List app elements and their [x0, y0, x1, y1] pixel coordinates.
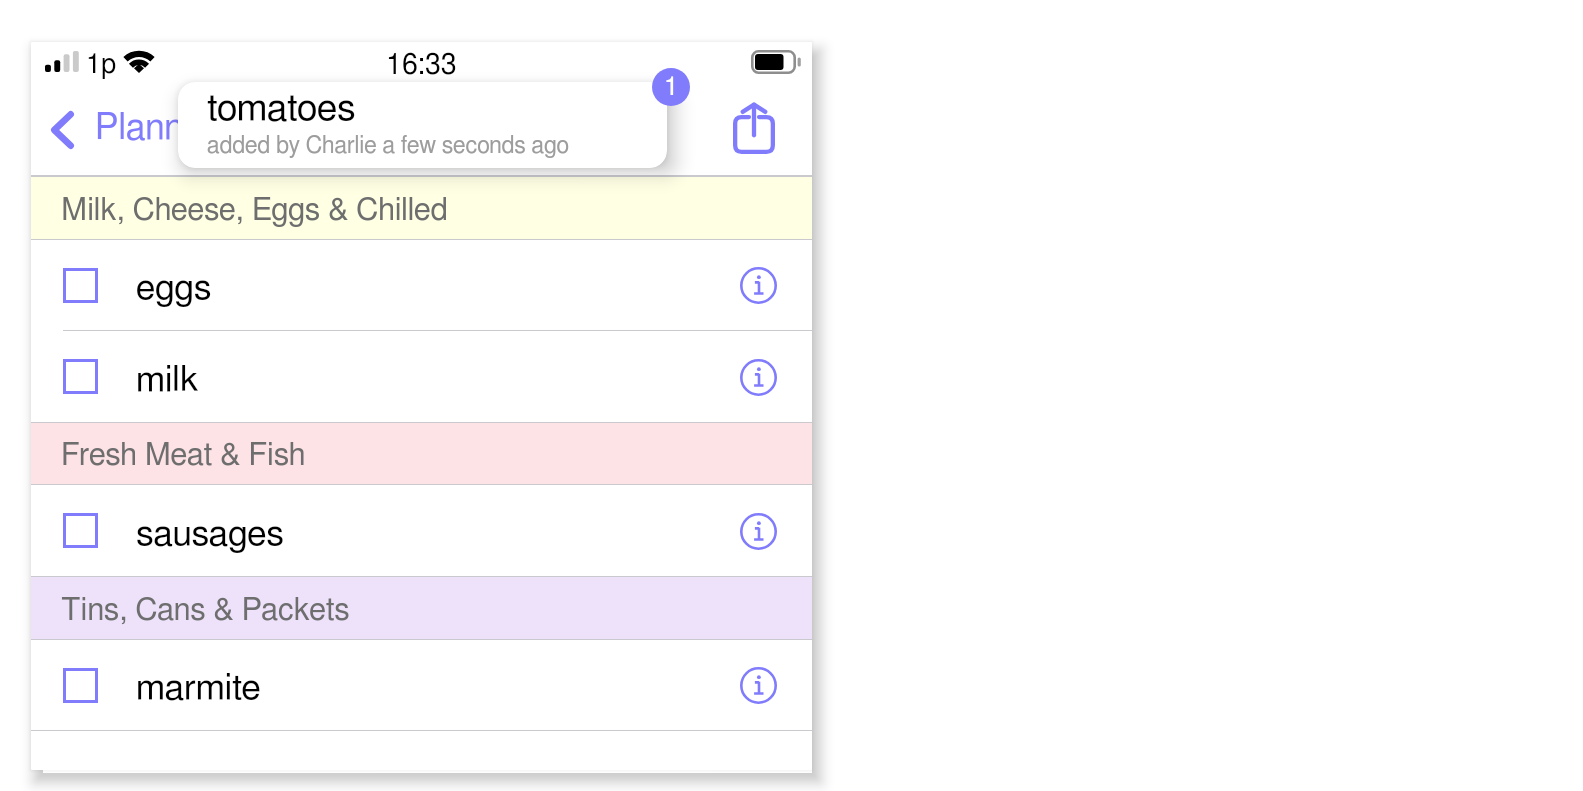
button[interactable]: milk: [31, 331, 812, 422]
button[interactable]: eggs: [31, 240, 812, 330]
staticText: eggs: [136, 270, 212, 306]
staticText: added by Charlie a few seconds ago: [207, 134, 569, 157]
staticText: Tins, Cans & Packets: [61, 595, 350, 626]
button[interactable]: Share: [725, 95, 783, 161]
staticText: milk: [136, 362, 199, 398]
button[interactable]: Item info: [734, 661, 782, 709]
button[interactable]: Planner: [95, 110, 215, 146]
button[interactable]: Tins, Cans & Packets: [31, 576, 812, 640]
staticText: 1: [664, 74, 679, 100]
button[interactable]: sausages: [31, 485, 812, 576]
button[interactable]: Item info: [734, 507, 782, 555]
staticText: sausages: [136, 516, 284, 552]
button[interactable]: 1 new item: [652, 68, 690, 106]
staticText: Milk, Cheese, Eggs & Chilled: [61, 195, 448, 226]
staticText: tomatoes: [207, 90, 356, 128]
button[interactable]: Item info: [734, 353, 782, 401]
button[interactable]: tomatoes: [178, 82, 667, 168]
button[interactable]: Back: [39, 96, 86, 164]
button[interactable]: marmite: [31, 640, 812, 730]
button[interactable]: Item info: [734, 261, 782, 309]
staticText: Fresh Meat & Fish: [61, 440, 306, 471]
button[interactable]: Milk, Cheese, Eggs & Chilled: [31, 176, 812, 240]
staticText: marmite: [136, 670, 261, 706]
button[interactable]: Fresh Meat & Fish: [31, 422, 812, 485]
staticText: 1p: [86, 51, 117, 78]
staticText: 16:33: [386, 51, 457, 80]
